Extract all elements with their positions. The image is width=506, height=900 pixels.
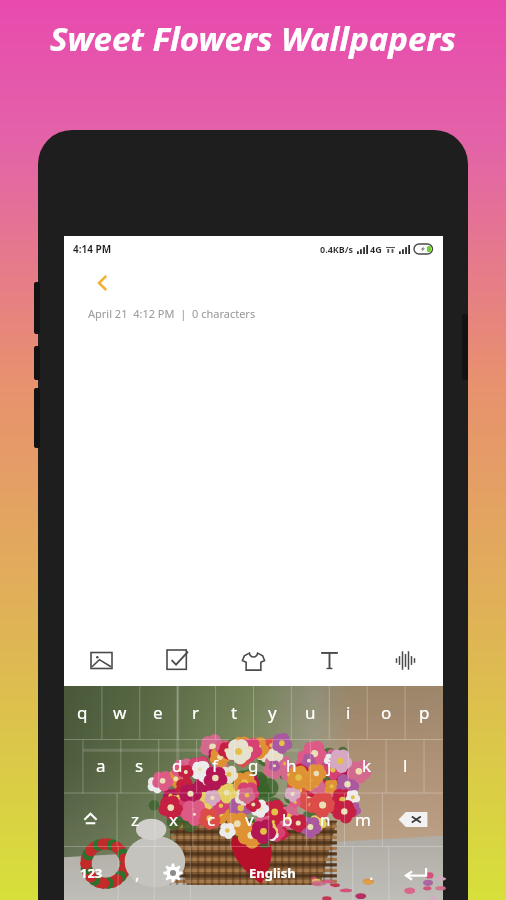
staticText: y — [268, 701, 277, 724]
staticText: h — [286, 754, 297, 777]
button[interactable]: . — [353, 846, 389, 900]
button[interactable]: p — [405, 686, 443, 739]
button[interactable]: English — [191, 846, 353, 900]
staticText: z — [131, 808, 139, 831]
button[interactable]: t — [215, 686, 253, 739]
staticText: 0.4KB/s — [320, 243, 354, 255]
staticText: , — [135, 862, 140, 885]
button[interactable]: l — [386, 739, 424, 792]
button[interactable]: u — [291, 686, 329, 739]
staticText: s — [135, 754, 144, 777]
staticText: v — [245, 808, 254, 831]
button[interactable]: j — [310, 739, 348, 792]
button[interactable]: Text format — [291, 634, 367, 686]
staticText: d — [172, 754, 183, 777]
button[interactable]: h — [272, 739, 310, 792]
staticText: English — [249, 864, 296, 882]
button[interactable]: c — [192, 792, 230, 846]
button[interactable]: Voice — [367, 634, 443, 686]
button[interactable]: Checklist — [139, 634, 215, 686]
button[interactable]: Shift — [64, 792, 116, 846]
staticText: c — [207, 808, 216, 831]
button[interactable]: Theme — [215, 634, 291, 686]
staticText: q — [77, 701, 88, 724]
staticText: u — [305, 701, 316, 724]
staticText: p — [419, 701, 430, 724]
button[interactable]: o — [367, 686, 405, 739]
button[interactable]: Enter — [389, 846, 443, 900]
button[interactable]: a — [82, 739, 120, 792]
button[interactable]: , — [119, 846, 155, 900]
staticText: m — [355, 808, 371, 831]
button[interactable]: k — [348, 739, 386, 792]
staticText: n — [320, 808, 331, 831]
staticText: i — [346, 701, 351, 724]
button[interactable]: g — [234, 739, 272, 792]
staticText: 4G — [370, 243, 382, 255]
button[interactable]: s — [120, 739, 158, 792]
staticText: f — [212, 754, 218, 777]
staticText: j — [327, 754, 332, 777]
button[interactable]: Back — [86, 266, 120, 300]
staticText: k — [362, 754, 372, 777]
button[interactable]: Insert image — [64, 634, 139, 686]
staticText: t — [231, 701, 238, 724]
staticText: r — [192, 701, 200, 724]
button[interactable]: r — [177, 686, 215, 739]
button[interactable]: y — [253, 686, 291, 739]
staticText: x — [169, 808, 178, 831]
button[interactable]: w — [101, 686, 139, 739]
button[interactable]: x — [154, 792, 192, 846]
staticText: o — [381, 701, 392, 724]
staticText: a — [96, 754, 106, 777]
staticText: l — [403, 754, 408, 777]
button[interactable]: b — [268, 792, 306, 846]
button[interactable]: q — [64, 686, 101, 739]
button[interactable]: 123 — [64, 846, 119, 900]
staticText: April 21 4:12 PM | 0 characters — [88, 306, 256, 321]
staticText: 123 — [80, 864, 103, 882]
button[interactable]: d — [158, 739, 196, 792]
staticText: g — [248, 754, 259, 777]
button[interactable]: Settings — [155, 846, 191, 900]
button[interactable]: z — [116, 792, 154, 846]
button[interactable]: m — [344, 792, 382, 846]
staticText: Sweet Flowers Wallpapers — [50, 16, 456, 61]
staticText: e — [153, 701, 163, 724]
button[interactable]: f — [196, 739, 234, 792]
staticText: w — [113, 701, 127, 724]
staticText: 4:14 PM — [73, 242, 112, 256]
button[interactable]: v — [230, 792, 268, 846]
staticText: b — [282, 808, 293, 831]
button[interactable]: i — [329, 686, 367, 739]
button[interactable]: e — [139, 686, 177, 739]
button[interactable]: Backspace — [382, 792, 443, 846]
staticText: . — [369, 862, 374, 885]
button[interactable]: n — [306, 792, 344, 846]
